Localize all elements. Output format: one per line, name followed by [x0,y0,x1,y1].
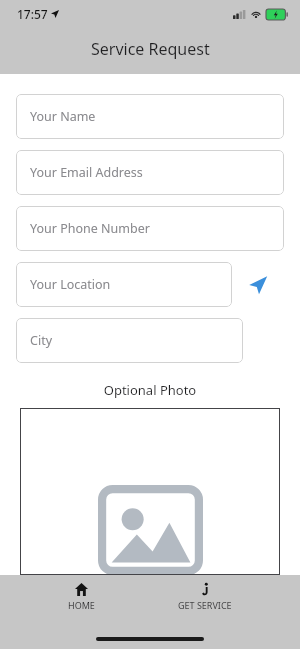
staticText: GET SERVICE [178,599,232,611]
staticText: Optional Photo [0,381,300,399]
button[interactable]: Use current location [232,262,284,307]
button[interactable]: Add photo [20,408,280,575]
staticText: City [30,332,53,349]
button[interactable]: Your Location [16,262,232,307]
button[interactable]: Your Email Address [16,150,284,195]
staticText: Your Phone Number [30,220,150,237]
button[interactable]: GET SERVICE [162,581,248,613]
button[interactable]: HOME [52,581,111,613]
staticText: 17:57 [17,6,48,22]
button[interactable]: Your Name [16,94,284,139]
staticText: Your Location [30,276,111,293]
staticText: Your Name [30,108,96,125]
button[interactable]: Your Phone Number [16,206,284,251]
staticText: HOME [68,599,95,611]
staticText: Your Email Address [30,164,143,181]
button[interactable]: City [16,318,243,363]
staticText: Service Request [91,38,210,60]
